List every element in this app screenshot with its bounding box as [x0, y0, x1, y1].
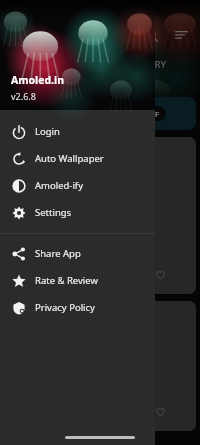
button[interactable]: Rate & Review — [0, 267, 155, 294]
staticText: Amoled.in — [11, 73, 65, 87]
staticText: OFF — [145, 109, 160, 119]
button[interactable]: Filter — [168, 22, 194, 48]
staticText: v2.6.8 — [11, 90, 36, 102]
button[interactable]: Share App — [0, 240, 155, 267]
button[interactable]: Amoled-ify — [0, 172, 155, 199]
staticText: Login — [35, 125, 60, 138]
button[interactable]: Auto Wallpaper — [0, 145, 155, 172]
staticText: Settings — [35, 206, 72, 219]
staticText: CATEGORY — [118, 58, 167, 71]
staticText: Share App — [35, 247, 81, 260]
button[interactable]: Login — [0, 118, 155, 145]
button[interactable]: Settings — [0, 199, 155, 226]
button[interactable]: Privacy Policy — [0, 294, 155, 321]
button[interactable]: OFF — [124, 97, 196, 130]
staticText: Amoled-ify — [35, 179, 83, 192]
staticText: Rate & Review — [35, 274, 98, 287]
button[interactable]: Search — [138, 22, 164, 48]
staticText: Privacy Policy — [35, 301, 95, 314]
staticText: Auto Wallpaper — [35, 152, 104, 165]
